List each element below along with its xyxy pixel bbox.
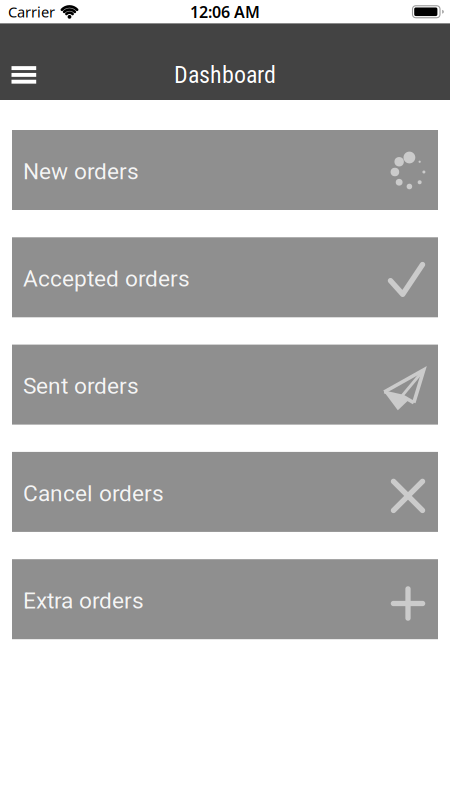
staticText: Dashboard [174, 61, 276, 89]
button[interactable]: Extra orders [12, 559, 438, 639]
staticText: New orders [23, 158, 139, 185]
staticText: 12:06 AM [190, 1, 260, 22]
button[interactable]: Cancel orders [12, 452, 438, 532]
button[interactable]: New orders [12, 130, 438, 210]
staticText: Extra orders [23, 587, 144, 614]
staticText: Carrier [8, 2, 55, 21]
staticText: Sent orders [23, 373, 139, 399]
button[interactable]: Sent orders [12, 345, 438, 425]
button[interactable]: Menu [0, 41, 36, 84]
staticText: Cancel orders [23, 480, 164, 507]
staticText: Accepted orders [23, 265, 190, 292]
button[interactable]: Accepted orders [12, 237, 438, 317]
